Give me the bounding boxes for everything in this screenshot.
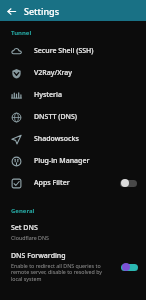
staticText: Plug-in Manager: [34, 156, 138, 166]
button[interactable]: Switch on: [119, 261, 139, 273]
staticText: Secure Shell (SSH): [34, 46, 138, 56]
button[interactable]: Back: [3, 3, 19, 19]
button[interactable]: Secure Shell (SSH): [0, 40, 146, 62]
button[interactable]: Shadowsocks: [0, 128, 146, 150]
staticText: Apps Filter: [34, 178, 118, 188]
staticText: Set DNS: [11, 223, 38, 233]
staticText: Enable to redirect all DNS queries to re…: [11, 262, 114, 283]
staticText: Settings: [24, 5, 60, 17]
staticText: DNS Forwarding: [11, 251, 66, 261]
button[interactable]: Hysteria: [0, 84, 146, 106]
staticText: Hysteria: [34, 90, 138, 100]
button[interactable]: Apps Filter: [0, 172, 146, 194]
staticText: General: [11, 207, 35, 215]
button[interactable]: DNS Forwarding: [0, 246, 146, 288]
button[interactable]: DNSTT (DNS): [0, 106, 146, 128]
staticText: V2Ray/Xray: [34, 68, 138, 78]
button[interactable]: Switch off: [118, 177, 138, 189]
button[interactable]: V2Ray/Xray: [0, 62, 146, 84]
staticText: Cloudflare DNS: [11, 234, 49, 241]
button[interactable]: Set DNS: [0, 218, 146, 246]
staticText: Tunnel: [11, 29, 32, 37]
staticText: DNSTT (DNS): [34, 112, 138, 122]
button[interactable]: Plug-in Manager: [0, 150, 146, 172]
staticText: Shadowsocks: [34, 134, 138, 144]
